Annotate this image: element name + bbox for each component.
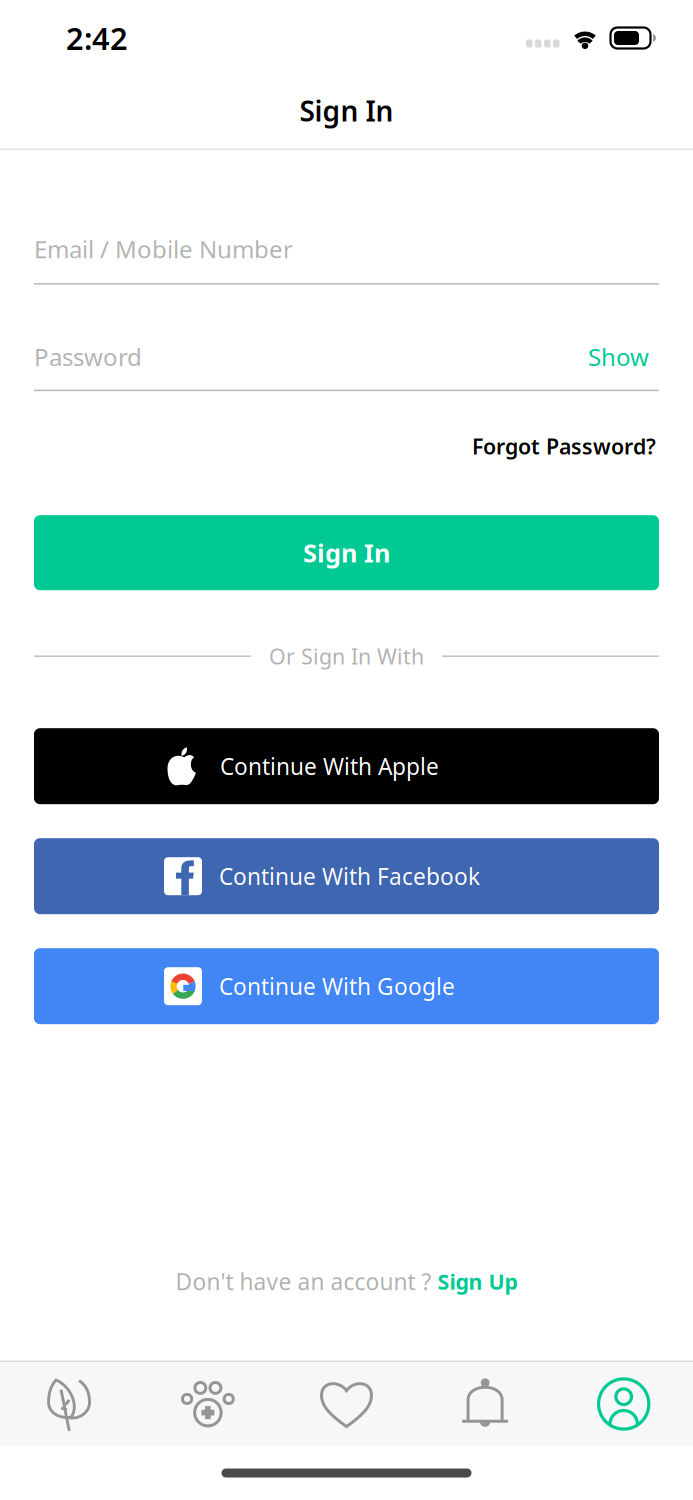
staticText: 2:42 bbox=[66, 18, 128, 58]
staticText: Continue With Facebook bbox=[219, 861, 480, 891]
button[interactable]: Continue With Facebook bbox=[34, 838, 659, 914]
button[interactable]: Sign Up bbox=[437, 1267, 517, 1296]
staticText: Sign Up bbox=[437, 1267, 517, 1296]
button[interactable]: Continue With Google bbox=[34, 948, 659, 1024]
button[interactable]: Profile bbox=[554, 1362, 693, 1446]
staticText: Don't have an account ? bbox=[175, 1266, 437, 1296]
staticText: Show bbox=[588, 341, 649, 373]
staticText: Sign In bbox=[303, 536, 390, 569]
staticText: Password bbox=[34, 341, 142, 373]
staticText: Or Sign In With bbox=[269, 642, 424, 670]
button[interactable]: Sign In bbox=[34, 515, 659, 590]
staticText: Forgot Password? bbox=[472, 432, 656, 460]
button[interactable]: Continue With Apple bbox=[34, 728, 659, 804]
staticText: Continue With Apple bbox=[220, 751, 439, 781]
staticText: Sign In bbox=[299, 92, 393, 129]
staticText: Email / Mobile Number bbox=[34, 233, 293, 265]
staticText: Continue With Google bbox=[219, 971, 455, 1001]
button[interactable]: Home bbox=[0, 1362, 139, 1446]
button[interactable]: Pets bbox=[139, 1362, 277, 1446]
button[interactable]: Notifications bbox=[416, 1362, 554, 1446]
button[interactable]: Forgot Password? bbox=[34, 433, 659, 459]
button[interactable]: Show bbox=[588, 341, 659, 373]
button[interactable]: Favorites bbox=[277, 1362, 416, 1446]
